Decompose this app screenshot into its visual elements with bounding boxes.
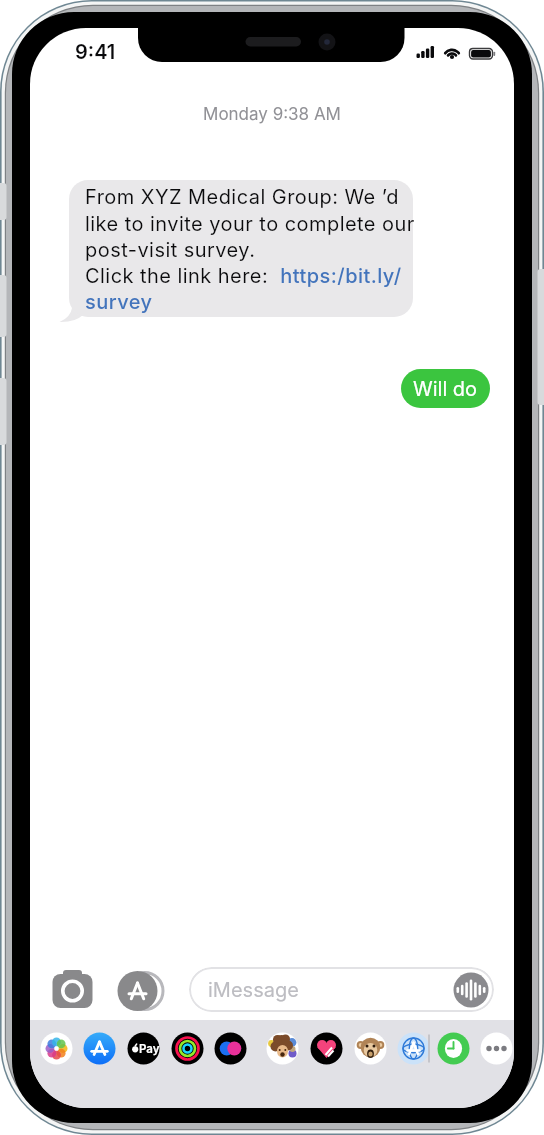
staticText: Will do — [413, 377, 478, 401]
button[interactable] — [46, 968, 98, 1014]
button[interactable] — [126, 1031, 162, 1067]
button[interactable] — [436, 1031, 472, 1067]
button[interactable] — [453, 972, 489, 1008]
staticText: iMessage — [208, 978, 299, 1002]
button[interactable] — [309, 1031, 345, 1067]
button[interactable] — [170, 1031, 206, 1067]
button[interactable] — [115, 969, 161, 1013]
staticText: 9:41 — [75, 40, 116, 64]
button[interactable] — [294, 260, 418, 287]
button[interactable] — [265, 1031, 301, 1067]
staticText: Pay — [139, 1042, 160, 1056]
button[interactable] — [213, 1031, 249, 1067]
button[interactable] — [83, 286, 158, 313]
button[interactable] — [82, 1031, 118, 1067]
button[interactable]: iMessage — [189, 967, 494, 1012]
button[interactable] — [396, 1031, 432, 1067]
button[interactable] — [39, 1031, 75, 1067]
staticText: From XYZ Medical Group: We ’d like to in… — [85, 185, 415, 313]
button[interactable] — [353, 1031, 389, 1067]
staticText: Monday 9:38 AM — [30, 104, 514, 125]
button[interactable] — [479, 1031, 514, 1067]
